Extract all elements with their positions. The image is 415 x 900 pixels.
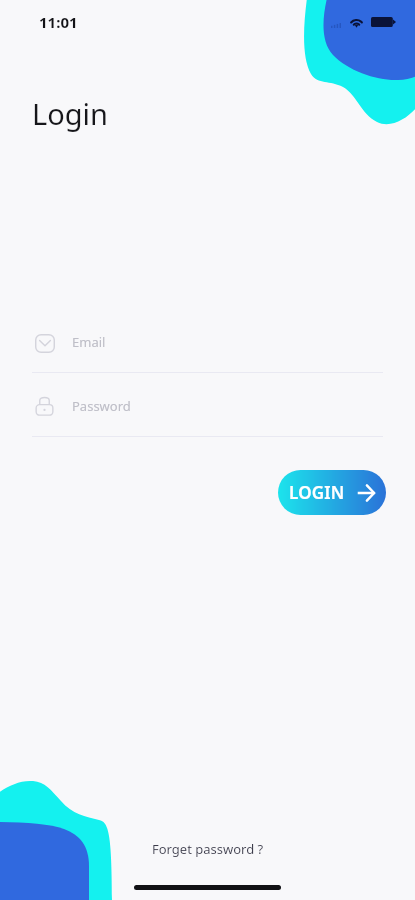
button[interactable]: Email [32, 328, 383, 373]
staticText: 11:01 [39, 12, 78, 32]
button[interactable]: LOGIN [278, 470, 386, 515]
staticText: LOGIN [289, 481, 345, 504]
button[interactable]: Password [32, 392, 383, 437]
staticText: Email [72, 333, 106, 351]
button[interactable]: Forget password ? [142, 834, 274, 864]
staticText: Password [72, 397, 131, 415]
staticText: Forget password ? [152, 840, 264, 858]
staticText: Login [32, 94, 108, 133]
